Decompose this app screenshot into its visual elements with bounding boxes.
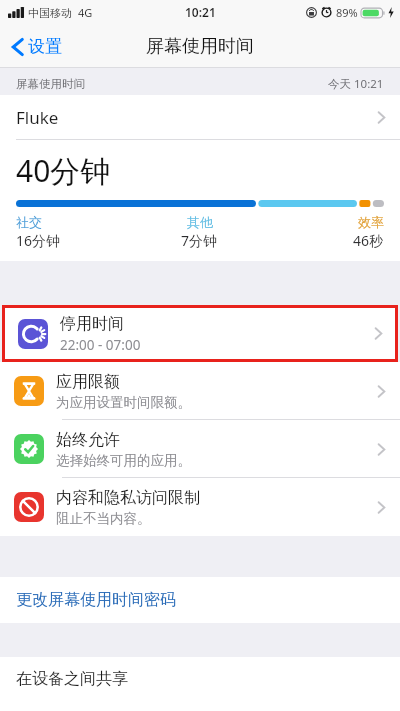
other: More	[377, 110, 386, 125]
staticText: 46秒	[353, 231, 384, 250]
staticText: 16分钟	[16, 231, 61, 250]
staticText: 阻止不当内容。	[56, 510, 151, 527]
staticText: 为应用设置时间限额。	[56, 394, 191, 411]
staticText: 屏幕使用时间	[146, 35, 254, 58]
staticText: 设置	[28, 36, 62, 57]
staticText: 其他	[187, 214, 213, 230]
button[interactable]: 内容和隐私访问限制	[0, 478, 400, 536]
staticText: 应用限额	[56, 372, 120, 392]
staticText: 选择始终可用的应用。	[56, 452, 191, 469]
staticText: 4G	[78, 5, 93, 20]
staticText: 中国移动	[28, 6, 72, 20]
staticText: 在设备之间共享	[16, 669, 128, 689]
staticText: 今天 10:21	[328, 76, 384, 92]
button[interactable]: 更改屏幕使用时间密码	[0, 577, 400, 623]
other: More	[377, 500, 386, 515]
button[interactable]: 在设备之间共享	[0, 657, 400, 711]
button[interactable]: 应用限额	[0, 362, 400, 420]
staticText: 屏幕使用时间	[16, 77, 85, 91]
other: More	[377, 384, 386, 399]
staticText: 始终允许	[56, 430, 120, 450]
button[interactable]: Fluke	[0, 95, 400, 139]
staticText: 7分钟	[181, 231, 218, 250]
staticText: 89%	[336, 5, 358, 20]
button[interactable]: 停用时间	[5, 308, 395, 359]
staticText: 40分钟	[16, 150, 111, 191]
staticText: 10:21	[185, 4, 216, 20]
staticText: 效率	[358, 214, 384, 230]
staticText: 停用时间	[60, 314, 124, 334]
staticText: 社交	[16, 214, 42, 230]
other: More	[374, 326, 383, 341]
button[interactable]: 始终允许	[0, 420, 400, 478]
staticText: 更改屏幕使用时间密码	[16, 590, 176, 610]
other: More	[377, 442, 386, 457]
button[interactable]: 设置	[8, 30, 66, 63]
staticText: 内容和隐私访问限制	[56, 488, 200, 508]
staticText: 22:00 - 07:00	[60, 336, 141, 354]
staticText: Fluke	[16, 106, 59, 129]
